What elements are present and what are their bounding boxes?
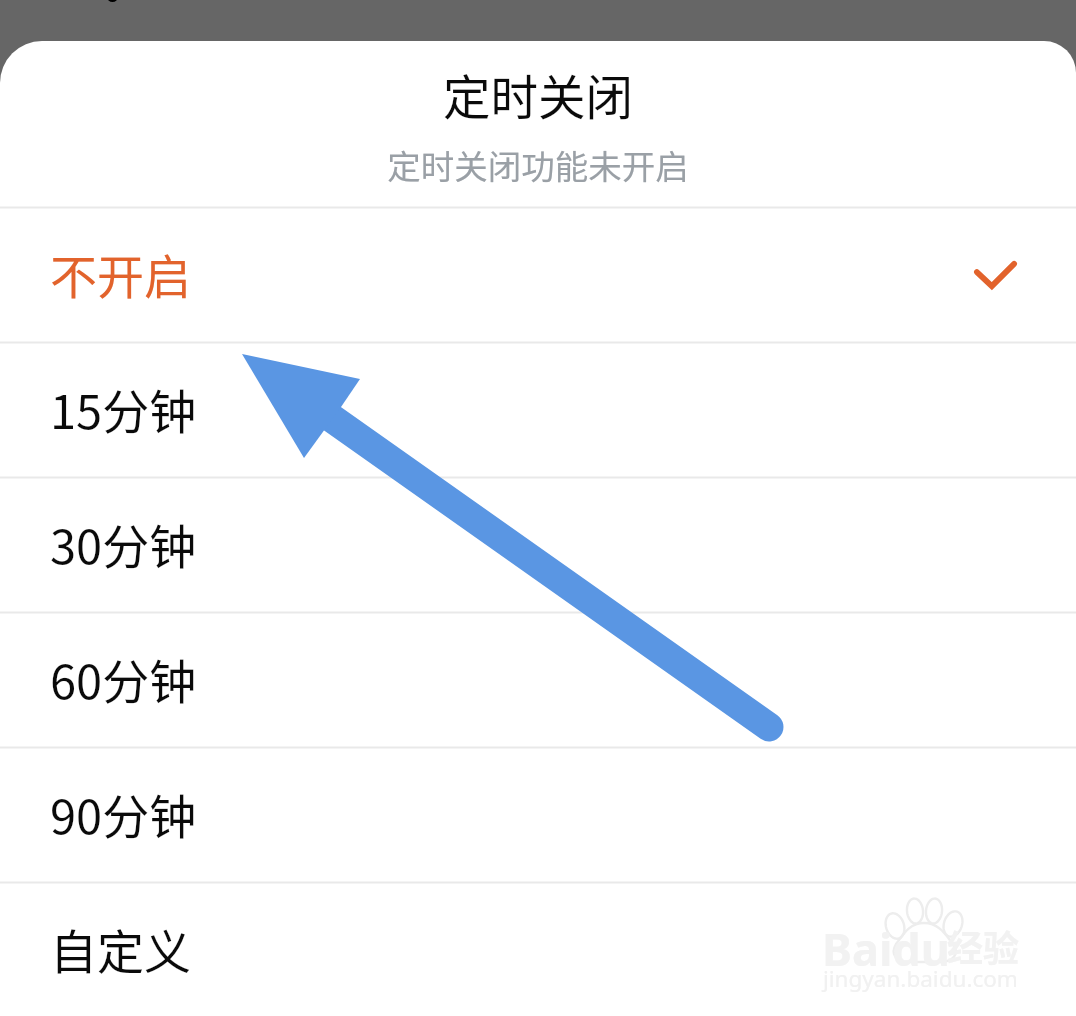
staticText: 自定义 (50, 914, 191, 982)
staticText: 15分钟 (50, 374, 197, 442)
staticText: Baidu (822, 918, 951, 979)
staticText: 定时关闭功能未开启 (387, 140, 689, 189)
staticText: jingyan.baidu.com (823, 963, 1018, 994)
button[interactable]: 60分钟 (0, 614, 1076, 746)
other: Selected (974, 261, 1017, 289)
button[interactable]: 30分钟 (0, 479, 1076, 611)
staticText: 30分钟 (50, 509, 197, 577)
button[interactable]: 90分钟 (0, 749, 1076, 881)
button[interactable]: 不开启 (0, 209, 1076, 341)
staticText: 经验 (947, 920, 1020, 972)
button[interactable]: 15分钟 (0, 344, 1076, 476)
staticText: 定时关闭 (443, 60, 633, 129)
staticText: 90分钟 (50, 779, 197, 847)
staticText: 不开启 (50, 239, 191, 307)
button[interactable]: 自定义 (0, 884, 1076, 1016)
staticText: 60分钟 (50, 644, 197, 712)
